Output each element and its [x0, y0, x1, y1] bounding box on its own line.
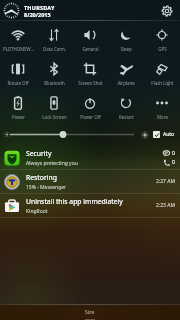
- button[interactable]: Restart: [108, 89, 144, 123]
- staticText: 2:27 AM: [156, 178, 175, 185]
- button[interactable]: Power Off: [72, 89, 108, 123]
- staticText: Flash Light: [151, 80, 174, 86]
- staticText: Rotate Off: [7, 80, 29, 86]
- staticText: Power Off: [80, 114, 101, 120]
- staticText: Lock Screen: [42, 114, 67, 120]
- staticText: Screen Shot: [78, 80, 103, 86]
- staticText: PLDTHOMEW...: [3, 46, 34, 52]
- button[interactable]: Flash Light: [144, 55, 180, 89]
- button[interactable]: PLDTHOMEW...: [0, 21, 36, 55]
- button[interactable]: Auto: [153, 131, 175, 138]
- button[interactable]: Size: [0, 305, 180, 320]
- staticText: THURSDAY: [24, 4, 55, 11]
- staticText: GPS: [158, 46, 167, 52]
- staticText: General: [82, 46, 99, 52]
- button[interactable]: Settings: [158, 2, 175, 19]
- button[interactable]: Uninstall this app immediately: [0, 194, 180, 218]
- button[interactable]: Brightness: [0, 123, 140, 146]
- button[interactable]: Security: [0, 146, 180, 170]
- staticText: 8/20/2015: [24, 11, 51, 18]
- staticText: Restoring: [26, 173, 57, 182]
- staticText: KingRoot: [26, 208, 48, 215]
- staticText: Data Conn.: [43, 46, 66, 52]
- button[interactable]: Power: [0, 89, 36, 123]
- staticText: Uninstall this app immediately: [26, 197, 123, 206]
- button[interactable]: Bluetooth: [36, 55, 72, 89]
- staticText: Bluetooth: [44, 80, 65, 86]
- staticText: More: [157, 114, 168, 120]
- button[interactable]: Data Conn.: [36, 21, 72, 55]
- staticText: Always protecting you: [26, 160, 78, 167]
- button[interactable]: Sleep: [108, 21, 144, 55]
- staticText: Restart: [119, 114, 134, 120]
- button[interactable]: General: [72, 21, 108, 55]
- staticText: Power: [12, 114, 25, 120]
- staticText: Security: [26, 149, 52, 158]
- button[interactable]: Restoring: [0, 170, 180, 194]
- button[interactable]: More: [144, 89, 180, 123]
- button[interactable]: Screen Shot: [72, 55, 108, 89]
- staticText: 15% - Messenger: [26, 184, 67, 191]
- staticText: Airplane: [117, 80, 135, 86]
- button[interactable]: GPS: [144, 21, 180, 55]
- button[interactable]: Lock Screen: [36, 89, 72, 123]
- staticText: 2:23 AM: [156, 202, 175, 209]
- staticText: Sleep: [120, 46, 132, 52]
- staticText: Auto: [163, 131, 175, 138]
- staticText: Size: [85, 309, 95, 316]
- button[interactable]: Airplane: [108, 55, 144, 89]
- button[interactable]: Rotate Off: [0, 55, 36, 89]
- staticText: 0: [172, 159, 175, 166]
- staticText: 0: [172, 150, 175, 157]
